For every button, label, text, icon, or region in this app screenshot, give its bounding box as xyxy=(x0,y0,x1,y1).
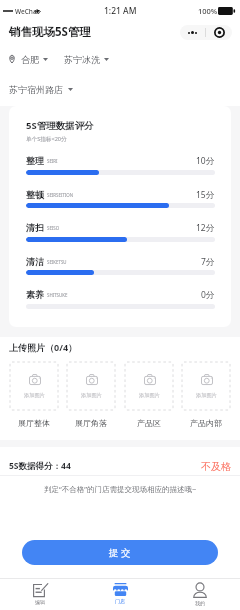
staticText: 苏宁宿州路店 xyxy=(9,84,63,95)
staticText: 12分 xyxy=(196,222,215,233)
staticText: 清扫 xyxy=(26,222,44,233)
staticText: SEIKETSU xyxy=(47,259,67,265)
button[interactable]: 门店 xyxy=(80,579,160,610)
staticText: 添加图片 xyxy=(81,392,102,399)
staticText: SEIRSEITION xyxy=(47,192,74,198)
button[interactable]: More options xyxy=(180,25,205,40)
button[interactable]: Close mini program xyxy=(206,25,232,40)
staticText: 产品内部 xyxy=(190,418,222,428)
staticText: 清洁 xyxy=(26,256,44,267)
staticText: 门店 xyxy=(115,598,125,604)
button[interactable]: 我的 xyxy=(160,579,240,610)
staticText: 苏宁冰洗 xyxy=(64,54,100,65)
staticText: 添加图片 xyxy=(24,392,45,399)
staticText: 我的 xyxy=(195,600,205,606)
staticText: 5S数据得分：44 xyxy=(9,460,71,472)
button[interactable]: Add photo: 展厅整体 xyxy=(10,362,58,410)
staticText: 0分 xyxy=(201,289,215,300)
staticText: 合肥 xyxy=(21,54,39,65)
staticText: 编辑 xyxy=(35,599,45,605)
staticText: 展厅角落 xyxy=(75,418,107,428)
button[interactable]: 编辑 xyxy=(0,579,80,610)
staticText: 100% xyxy=(198,6,218,16)
staticText: 整理 xyxy=(26,155,44,166)
staticText: 7分 xyxy=(201,256,215,267)
staticText: 不及格 xyxy=(201,460,231,473)
button[interactable]: Add photo: 产品内部 xyxy=(182,362,230,410)
staticText: 添加图片 xyxy=(196,392,217,399)
staticText: 添加图片 xyxy=(139,392,160,399)
staticText: SHITSUKE xyxy=(47,292,68,298)
staticText: 素养 xyxy=(26,289,44,300)
staticText: SEISO xyxy=(47,225,60,231)
staticText: 销售现场5S管理 xyxy=(9,24,91,40)
staticText: 判定“不合格”的门店需提交现场相应的描述哦~ xyxy=(44,484,197,494)
staticText: 1:21 AM xyxy=(104,5,137,17)
button[interactable]: Add photo: 展厅角落 xyxy=(67,362,115,410)
staticText: 展厅整体 xyxy=(18,418,50,428)
staticText: 5S管理数据评分 xyxy=(26,119,94,132)
button[interactable]: 提 交 xyxy=(22,540,218,565)
staticText: 整顿 xyxy=(26,189,44,200)
staticText: 产品区 xyxy=(137,418,161,428)
staticText: 提 交 xyxy=(109,546,131,559)
staticText: 10分 xyxy=(196,155,215,166)
button[interactable]: Add photo: 产品区 xyxy=(125,362,173,410)
staticText: 15分 xyxy=(196,189,215,200)
staticText: WeChat xyxy=(15,7,40,16)
staticText: 单个S指标<20分 xyxy=(26,135,67,143)
staticText: SEIRI xyxy=(47,158,58,164)
staticText: 上传照片（0/4） xyxy=(9,341,78,353)
